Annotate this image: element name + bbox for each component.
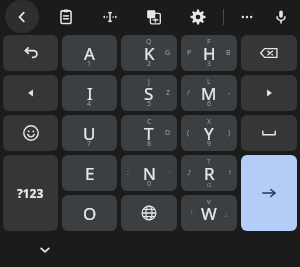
button[interactable]: 7	[62, 115, 117, 151]
button[interactable]: X	[181, 115, 237, 151]
staticText: 5	[147, 99, 152, 109]
button[interactable]	[3, 35, 58, 71]
staticText: )	[228, 128, 231, 138]
button[interactable]: Back	[5, 0, 39, 33]
staticText: /	[187, 88, 190, 98]
staticText: 」	[224, 209, 231, 218]
staticText: P	[187, 48, 192, 58]
staticText: D	[165, 128, 171, 138]
staticText: C	[147, 117, 152, 127]
staticText: I	[87, 82, 93, 105]
staticText: S	[144, 82, 154, 105]
staticText: X	[207, 117, 212, 127]
button[interactable]: J	[121, 75, 177, 111]
staticText: J	[148, 77, 150, 87]
staticText: A	[84, 42, 95, 65]
staticText: 4	[87, 99, 92, 109]
staticText: Z	[166, 88, 171, 98]
staticText: B	[226, 48, 231, 58]
staticText: N	[143, 162, 156, 185]
staticText: 0	[147, 179, 152, 189]
button[interactable]: Hide keyboard	[32, 237, 58, 263]
button[interactable]: C	[121, 115, 177, 151]
staticText: !	[229, 168, 231, 178]
button[interactable]: 4	[62, 75, 117, 111]
button[interactable]: Clipboard	[49, 0, 83, 33]
staticText: Q	[146, 37, 152, 47]
staticText: T	[144, 122, 154, 145]
staticText: v	[207, 197, 211, 207]
staticText: ▫	[207, 181, 212, 189]
staticText: E	[85, 162, 95, 185]
button[interactable]: O	[62, 195, 117, 231]
button[interactable]	[241, 35, 297, 71]
staticText: U	[83, 122, 96, 145]
staticText: 6	[207, 99, 212, 109]
staticText: M	[201, 82, 217, 105]
staticText: W	[201, 202, 217, 225]
staticText: R	[204, 162, 215, 185]
staticText: 1	[87, 59, 92, 69]
staticText: ?	[207, 157, 211, 167]
button[interactable]	[121, 195, 177, 231]
staticText: O	[83, 202, 97, 225]
button[interactable]: L	[181, 75, 237, 111]
button[interactable]	[241, 75, 297, 111]
staticText: 「	[187, 209, 194, 218]
staticText: ♪	[187, 169, 192, 177]
staticText: :	[127, 168, 129, 178]
button[interactable]	[241, 155, 297, 231]
button[interactable]	[3, 115, 58, 151]
staticText: Y	[204, 122, 214, 145]
button[interactable]: F	[181, 35, 237, 71]
button[interactable]: E	[62, 155, 117, 191]
staticText: K	[144, 42, 155, 65]
button[interactable]	[3, 75, 58, 111]
staticText: 2	[147, 59, 152, 69]
staticText: 3	[207, 59, 212, 69]
staticText: ?123	[17, 185, 44, 201]
staticText: ·	[169, 168, 171, 178]
staticText: G	[165, 48, 171, 58]
staticText: (	[187, 128, 190, 138]
button[interactable]: ?	[181, 155, 237, 191]
button[interactable]: Text editing	[93, 0, 127, 33]
staticText: 8	[147, 139, 152, 149]
staticText: H	[203, 42, 216, 65]
staticText: F	[207, 37, 211, 47]
staticText: -	[228, 88, 231, 98]
button[interactable]: Translate	[137, 0, 171, 33]
button[interactable]: Q	[121, 35, 177, 71]
button[interactable]	[241, 115, 297, 151]
button[interactable]: 1	[62, 35, 117, 71]
button[interactable]: 0	[121, 155, 177, 191]
button[interactable]: Voice input	[264, 0, 298, 33]
staticText: 9	[207, 139, 212, 149]
staticText: L	[207, 77, 211, 87]
staticText: 7	[87, 139, 92, 149]
button[interactable]: Settings	[181, 0, 215, 33]
button[interactable]: v	[181, 195, 237, 231]
button[interactable]: More options	[230, 0, 264, 33]
button[interactable]: ?123	[3, 155, 58, 231]
